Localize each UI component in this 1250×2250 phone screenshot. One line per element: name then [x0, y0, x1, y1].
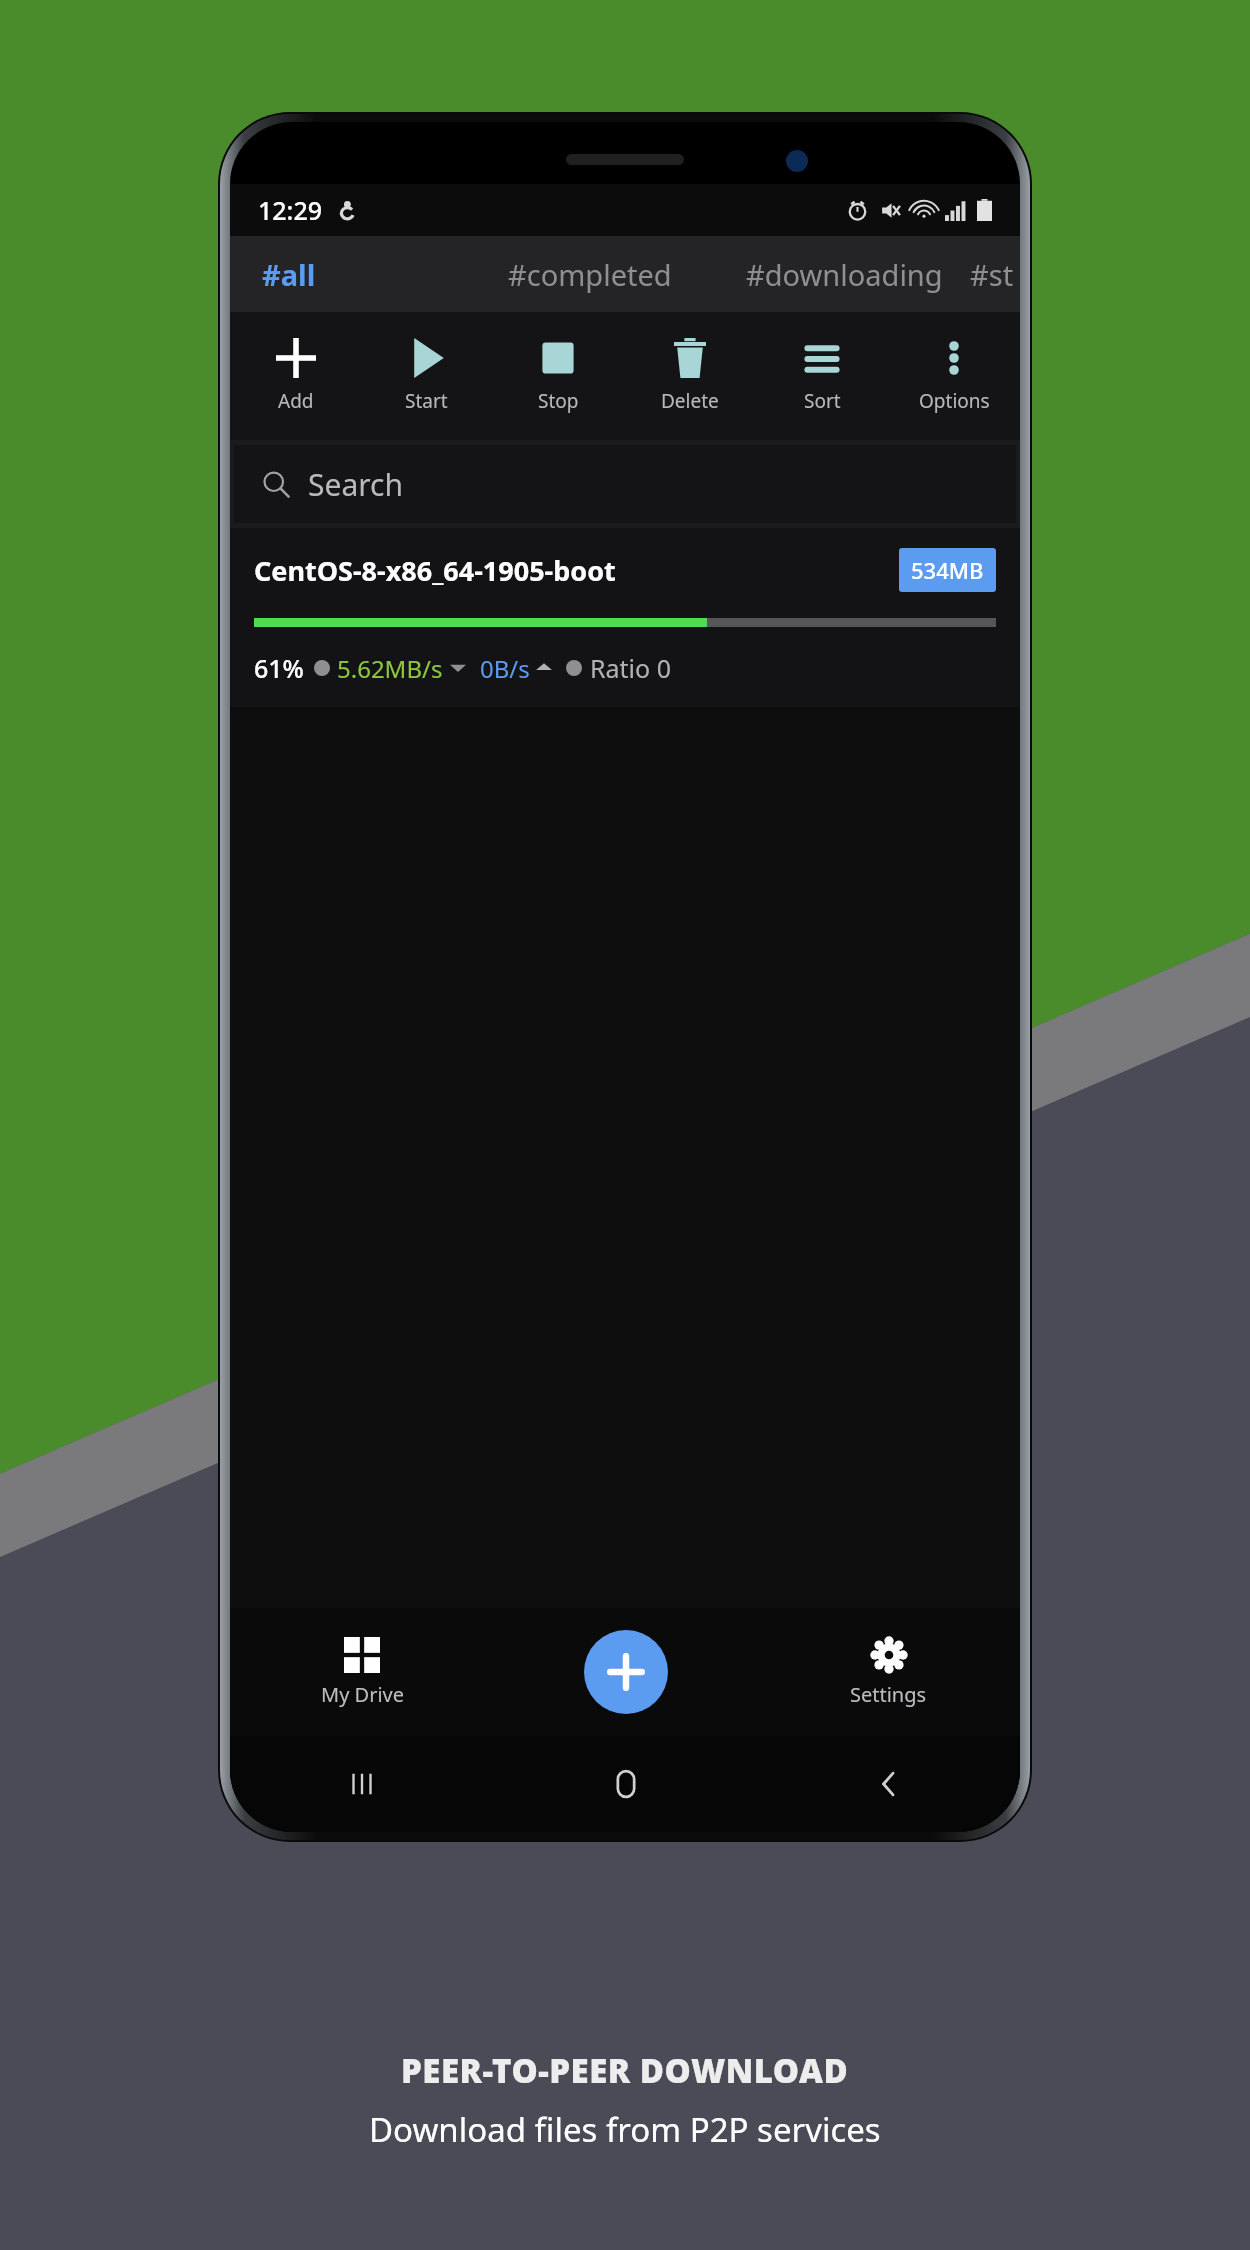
staticText: My Drive: [321, 1681, 404, 1708]
staticText: Sort: [804, 388, 841, 414]
staticText: #completed: [508, 255, 672, 294]
staticText: 534MB: [911, 555, 984, 585]
button[interactable]: #completed: [462, 236, 718, 312]
button[interactable]: Delete: [624, 312, 756, 440]
staticText: 12:29: [258, 193, 323, 227]
staticText: 0B/s: [480, 652, 530, 685]
button[interactable]: #downloading: [718, 236, 970, 312]
button[interactable]: Settings: [757, 1608, 1020, 1736]
button[interactable]: #all: [230, 236, 462, 312]
staticText: Options: [919, 388, 990, 414]
button[interactable]: Add torrent: [584, 1630, 668, 1714]
button[interactable]: Back: [757, 1736, 1020, 1832]
button[interactable]: My Drive: [230, 1608, 494, 1736]
staticText: Start: [405, 388, 448, 414]
staticText: Ratio 0: [590, 651, 671, 685]
button[interactable]: Stop: [492, 312, 624, 440]
staticText: #downloading: [746, 255, 943, 294]
staticText: #all: [262, 255, 316, 294]
staticText: Stop: [538, 388, 579, 414]
button[interactable]: Recents: [230, 1736, 494, 1832]
button[interactable]: Sort: [756, 312, 888, 440]
button[interactable]: #sto: [970, 236, 1020, 312]
staticText: CentOS-8-x86_64-1905-boot: [254, 552, 899, 589]
button[interactable]: CentOS-8-x86_64-1905-boot: [230, 528, 1020, 707]
button[interactable]: Add: [230, 312, 361, 440]
button[interactable]: Start: [361, 312, 492, 440]
staticText: Add: [278, 388, 314, 414]
staticText: 5.62MB/s: [337, 652, 443, 685]
button[interactable]: Options: [888, 312, 1020, 440]
staticText: PEER-TO-PEER DOWNLOAD: [401, 2048, 849, 2093]
staticText: Search: [308, 464, 403, 505]
button[interactable]: Search: [234, 445, 1016, 523]
button[interactable]: Home: [494, 1736, 757, 1832]
staticText: Delete: [661, 388, 719, 414]
staticText: Download files from P2P services: [369, 2107, 881, 2152]
staticText: 61%: [254, 651, 304, 685]
staticText: Settings: [850, 1681, 927, 1708]
staticText: #sto: [970, 255, 1020, 294]
